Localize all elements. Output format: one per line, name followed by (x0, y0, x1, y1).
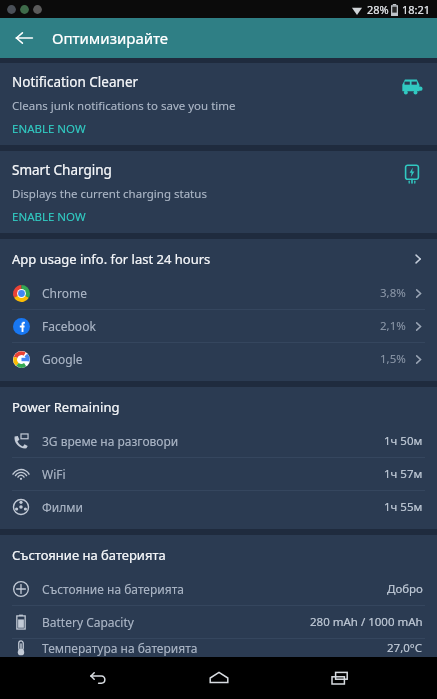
button[interactable]: Back (4, 18, 44, 58)
staticText: 1ч 57м (384, 466, 423, 482)
staticText: 28% (367, 2, 389, 17)
staticText: Температура на батерията (42, 640, 198, 656)
staticText: Оптимизирайте (52, 28, 169, 48)
staticText: 280 mAh / 1000 mAh (310, 614, 423, 630)
button[interactable]: Smart Charging (0, 151, 437, 233)
staticText: Facebook (42, 318, 96, 334)
staticText: Notification Cleaner (12, 73, 139, 91)
staticText: 27,0°C (387, 640, 423, 656)
button[interactable]: Back (73, 657, 121, 699)
button[interactable]: Google (0, 343, 437, 375)
staticText: App usage info. for last 24 hours (12, 250, 211, 268)
button[interactable]: ENABLE NOW (12, 209, 86, 225)
button[interactable]: Състояние на батерията (0, 573, 437, 605)
staticText: Състояние на батерията (42, 581, 184, 597)
button[interactable]: Recents (316, 657, 364, 699)
button[interactable]: Home (195, 657, 243, 699)
staticText: 1ч 50м (384, 433, 423, 449)
staticText: Състояние на батерията (12, 546, 166, 564)
other: Smart Charging (397, 159, 427, 189)
staticText: ENABLE NOW (12, 121, 86, 137)
button[interactable]: 3G време на разговори (0, 425, 437, 457)
staticText: 1,5% (380, 351, 406, 367)
staticText: Google (42, 351, 83, 367)
button[interactable]: WiFi (0, 458, 437, 490)
staticText: Добро (387, 581, 423, 597)
staticText: 3G време на разговори (42, 433, 179, 449)
staticText: 3,8% (380, 285, 406, 301)
button[interactable]: Chrome (0, 277, 437, 309)
button[interactable]: Notification Cleaner (0, 63, 437, 145)
button[interactable]: App usage info. for last 24 hours (0, 239, 437, 277)
staticText: Cleans junk notifications to save you ti… (12, 98, 236, 114)
button[interactable]: ENABLE NOW (12, 121, 86, 137)
staticText: Филми (42, 499, 83, 515)
button[interactable]: Facebook (0, 310, 437, 342)
button[interactable]: Battery Capacity (0, 606, 437, 638)
other: Notification Cleaner (397, 71, 427, 101)
staticText: Power Remaining (12, 398, 120, 416)
staticText: Smart Charging (12, 161, 112, 179)
staticText: 18:21 (402, 2, 431, 17)
staticText: ENABLE NOW (12, 209, 86, 225)
staticText: WiFi (42, 466, 66, 482)
button[interactable]: Температура на батерията (0, 639, 437, 657)
staticText: Battery Capacity (42, 614, 134, 630)
button[interactable]: Филми (0, 491, 437, 523)
staticText: 1ч 55м (384, 499, 423, 515)
staticText: Displays the current charging status (12, 186, 207, 202)
staticText: 2,1% (380, 318, 406, 334)
staticText: Chrome (42, 285, 87, 301)
